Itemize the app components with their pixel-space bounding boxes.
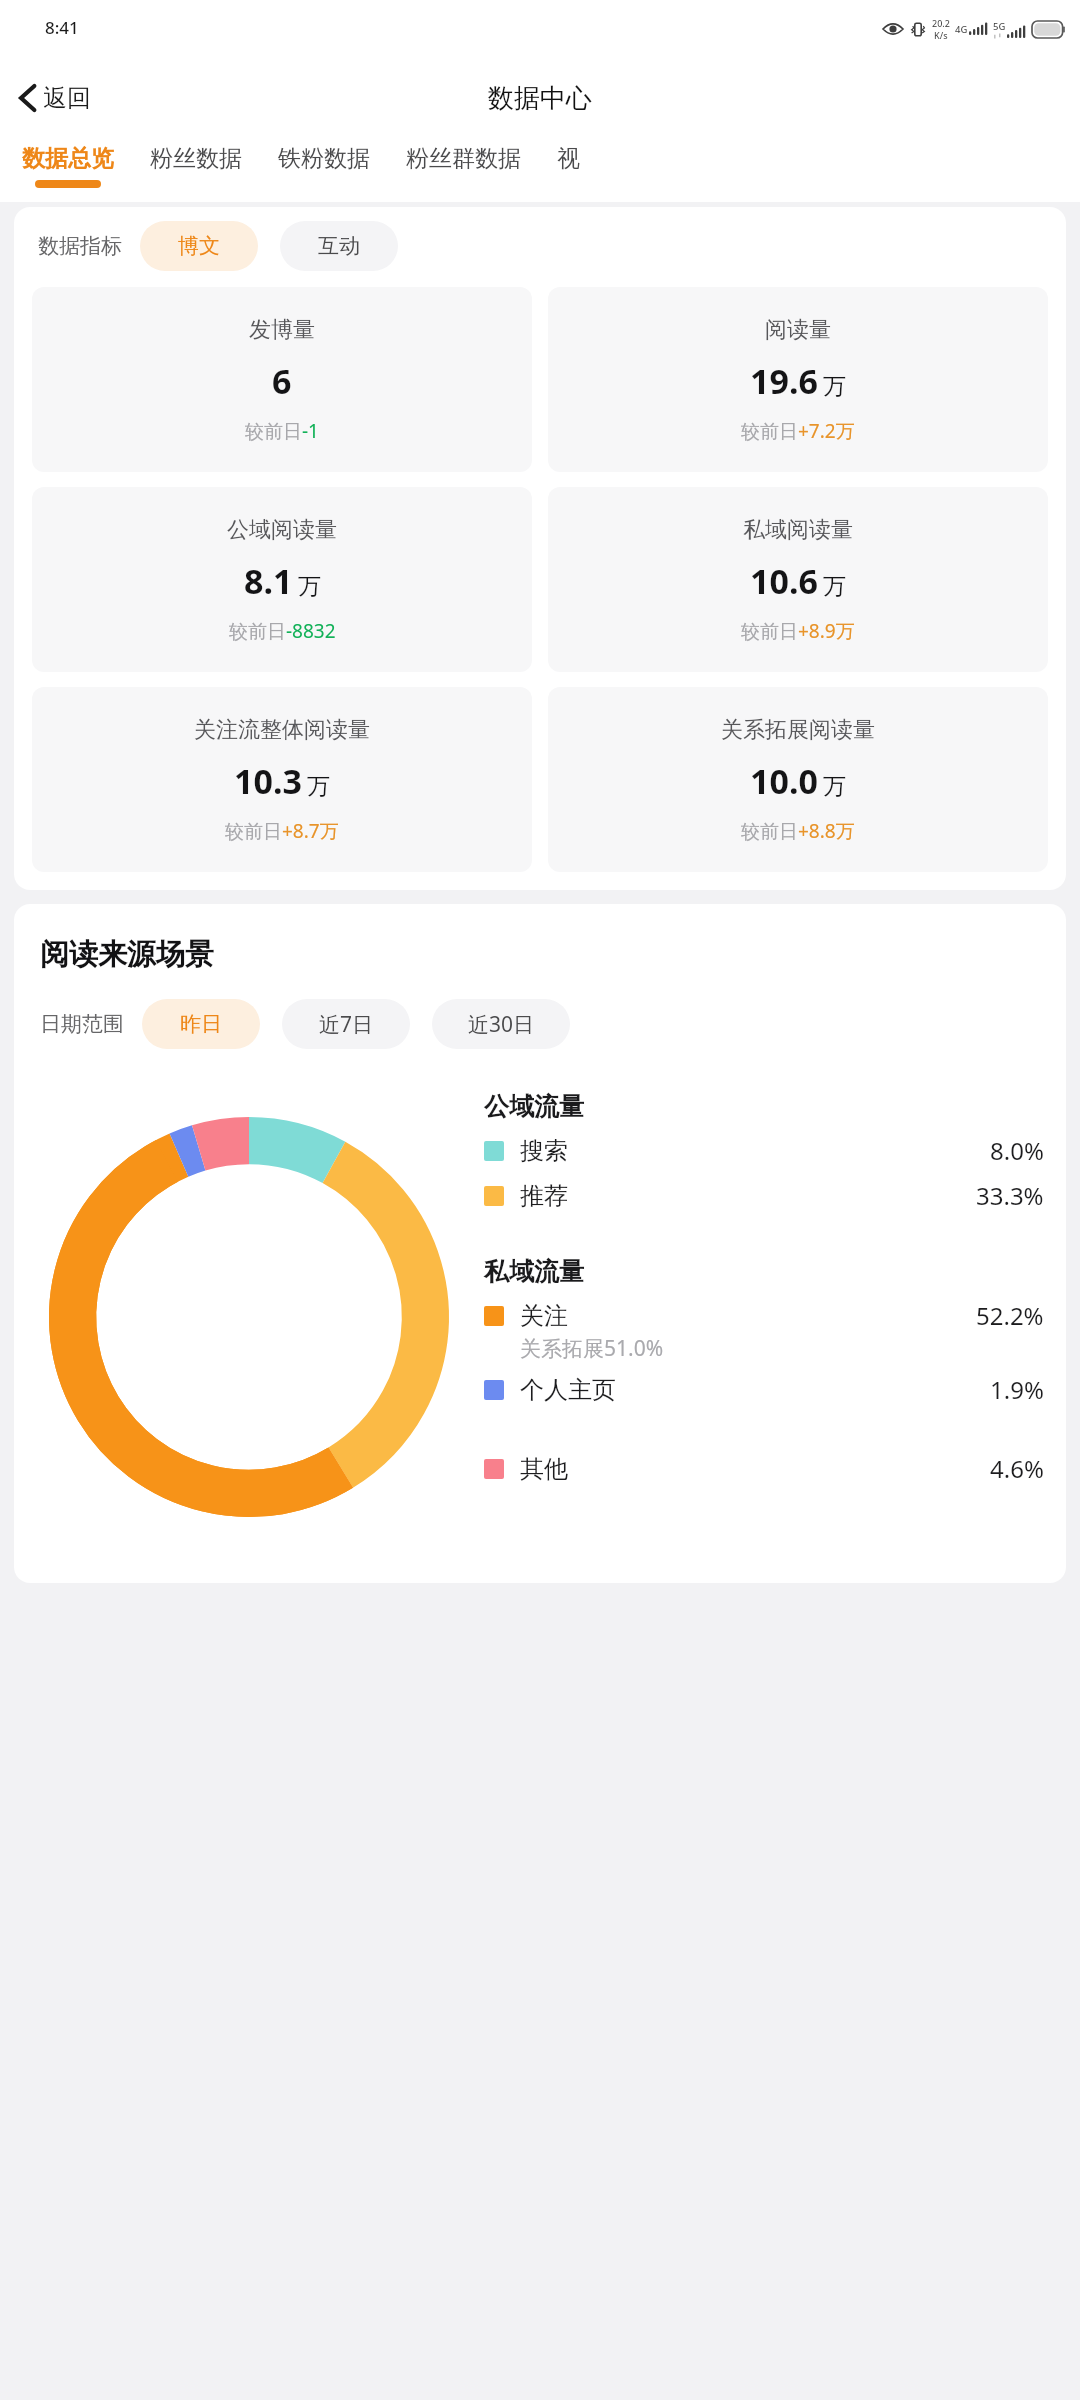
button[interactable]: 视 — [539, 138, 598, 202]
button[interactable]: 推荐 — [484, 1179, 1044, 1212]
staticText: 搜索 — [520, 1136, 568, 1166]
button[interactable]: 博文 — [140, 221, 258, 271]
button[interactable]: 互动 — [280, 221, 398, 271]
staticText: 4.6% — [990, 1452, 1044, 1485]
staticText: 铁粉数据 — [278, 144, 370, 173]
staticText: 19.6 — [750, 358, 818, 404]
staticText: 公域流量 — [484, 1091, 584, 1122]
button[interactable]: 阅读量 — [548, 287, 1048, 472]
staticText: 粉丝群数据 — [406, 144, 521, 173]
staticText: 私域阅读量 — [743, 516, 853, 544]
staticText: 粉丝数据 — [150, 144, 242, 173]
button[interactable]: 关系拓展阅读量 — [548, 687, 1048, 872]
staticText: 万 — [307, 772, 330, 801]
button[interactable]: 关注 — [484, 1299, 1044, 1332]
button[interactable]: 私域阅读量 — [548, 487, 1048, 672]
staticText: 8.0% — [990, 1134, 1044, 1167]
staticText: 较前日+8.7万 — [225, 818, 339, 844]
staticText: 近30日 — [468, 1010, 535, 1039]
staticText: 8.1 — [244, 558, 293, 604]
staticText: 阅读来源场景 — [40, 936, 214, 973]
button[interactable]: 数据总览 — [0, 138, 132, 202]
staticText: 万 — [823, 372, 846, 401]
staticText: 1.9% — [990, 1373, 1044, 1406]
button[interactable]: 其他 — [484, 1452, 1044, 1485]
staticText: 较前日+7.2万 — [741, 418, 855, 444]
staticText: 数据总览 — [22, 144, 114, 173]
staticText: 推荐 — [520, 1181, 568, 1211]
staticText: 万 — [823, 572, 846, 601]
staticText: 昨日 — [180, 1011, 222, 1037]
staticText: 博文 — [178, 233, 220, 259]
staticText: 互动 — [318, 233, 360, 259]
staticText: 阅读量 — [765, 316, 831, 344]
staticText: 关注流整体阅读量 — [194, 716, 370, 744]
staticText: 近7日 — [319, 1010, 374, 1039]
staticText: 较前日+8.8万 — [741, 818, 855, 844]
staticText: 关系拓展51.0% — [520, 1334, 664, 1363]
staticText: 5G — [993, 20, 1006, 33]
staticText: 关注 — [520, 1301, 568, 1331]
staticText: 返回 — [43, 83, 91, 113]
staticText: 4G — [955, 23, 968, 36]
staticText: 较前日-1 — [245, 418, 319, 444]
staticText: 公域阅读量 — [227, 516, 337, 544]
button[interactable]: 粉丝群数据 — [388, 138, 539, 202]
staticText: 发博量 — [249, 316, 315, 344]
staticText: 万 — [298, 572, 321, 601]
staticText: 10.6 — [750, 558, 818, 604]
button[interactable]: 粉丝数据 — [132, 138, 260, 202]
staticText: 10.3 — [234, 758, 302, 804]
staticText: 52.2% — [976, 1299, 1044, 1332]
button[interactable]: 公域阅读量 — [32, 487, 532, 672]
button[interactable]: 发博量 — [32, 287, 532, 472]
staticText: 较前日+8.9万 — [741, 618, 855, 644]
staticText: 个人主页 — [520, 1375, 616, 1405]
staticText: 8:41 — [45, 16, 79, 39]
button[interactable]: 近7日 — [282, 999, 410, 1049]
staticText: 33.3% — [976, 1179, 1044, 1212]
button[interactable]: 铁粉数据 — [260, 138, 388, 202]
staticText: 万 — [823, 772, 846, 801]
staticText: 私域流量 — [484, 1256, 584, 1287]
staticText: 视 — [557, 144, 580, 173]
button[interactable]: 昨日 — [142, 999, 260, 1049]
staticText: 10.0 — [750, 758, 818, 804]
staticText: 20.2 — [932, 17, 950, 29]
staticText: 较前日-8832 — [229, 618, 336, 644]
staticText: 日期范围 — [40, 1011, 124, 1037]
button[interactable]: 关注流整体阅读量 — [32, 687, 532, 872]
button[interactable]: 近30日 — [432, 999, 570, 1049]
staticText: 关系拓展阅读量 — [721, 716, 875, 744]
button[interactable]: 搜索 — [484, 1134, 1044, 1167]
staticText: 其他 — [520, 1454, 568, 1484]
staticText: 数据指标 — [38, 233, 122, 259]
staticText: K/s — [934, 29, 948, 41]
button[interactable]: 返回 — [0, 75, 107, 121]
button[interactable]: 个人主页 — [484, 1373, 1044, 1406]
staticText: 数据中心 — [488, 82, 592, 115]
staticText: 6 — [272, 358, 292, 404]
